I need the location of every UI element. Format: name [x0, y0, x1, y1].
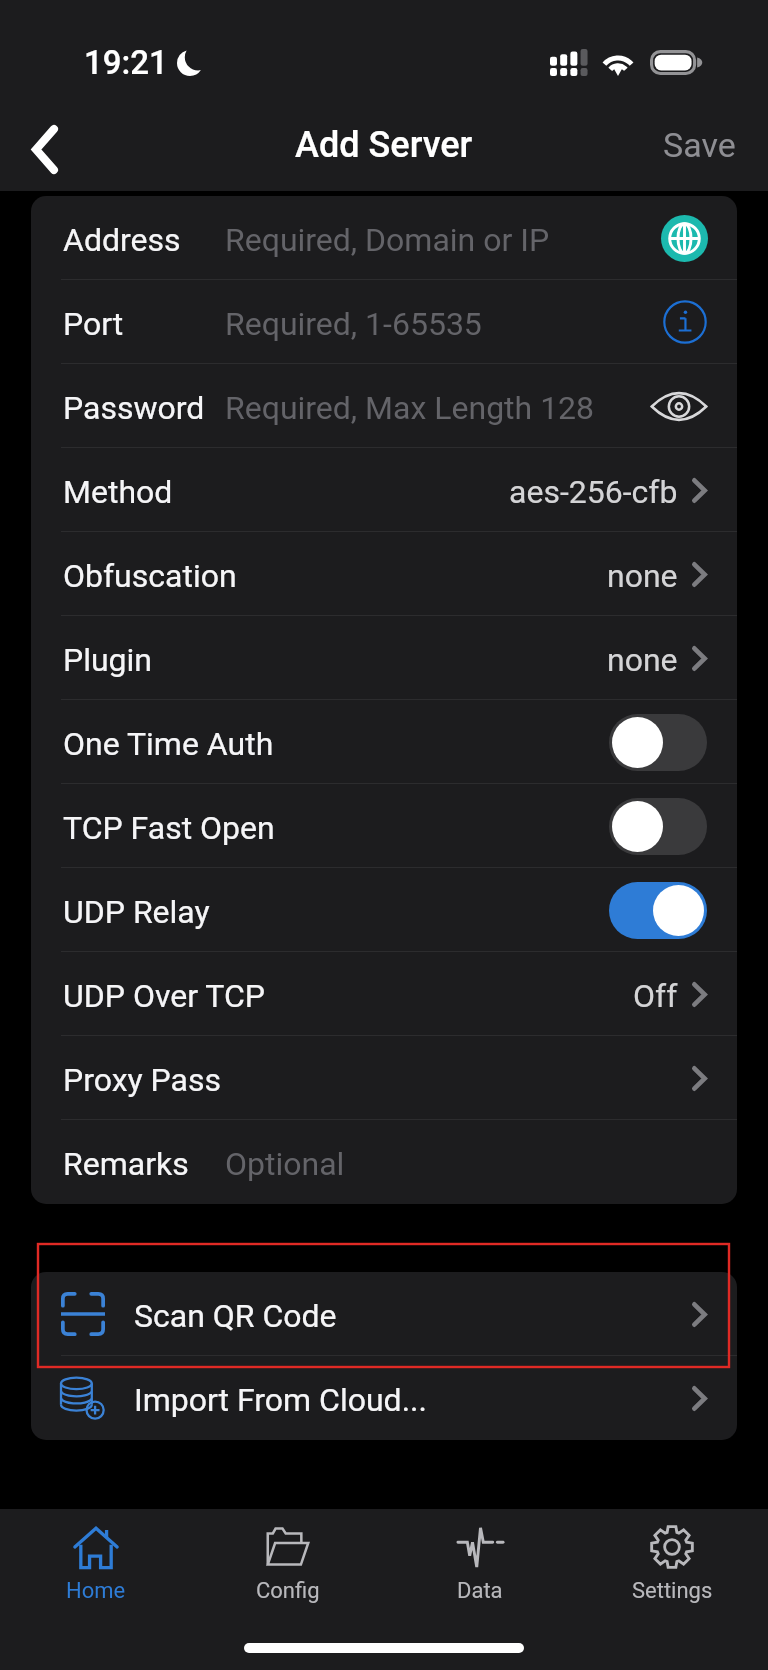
staticText: Method — [63, 473, 173, 511]
button[interactable]: Port — [31, 280, 737, 364]
button[interactable]: Plugin — [31, 616, 737, 700]
staticText: Data — [457, 1578, 503, 1604]
staticText: Config — [256, 1578, 320, 1604]
button[interactable]: Scan QR Code — [31, 1272, 737, 1356]
staticText: Required, Domain or IP — [225, 221, 550, 259]
button[interactable]: UDP Relay — [31, 868, 737, 952]
button[interactable]: UDP Relay — [609, 882, 707, 939]
staticText: Address — [63, 221, 181, 259]
button[interactable]: Address — [31, 196, 737, 280]
button[interactable]: Import From Cloud... — [31, 1356, 737, 1440]
staticText: aes-256-cfb — [509, 473, 678, 511]
button[interactable]: Method — [31, 448, 737, 532]
button[interactable]: UDP Over TCP — [31, 952, 737, 1036]
staticText: Optional — [225, 1145, 345, 1183]
button[interactable]: One Time Auth — [31, 700, 737, 784]
button[interactable]: Password — [31, 364, 737, 448]
staticText: none — [607, 557, 678, 595]
staticText: TCP Fast Open — [63, 809, 275, 847]
staticText: Off — [633, 977, 678, 1015]
staticText: One Time Auth — [63, 725, 274, 763]
staticText: Add Server — [295, 124, 473, 166]
staticText: UDP Over TCP — [63, 977, 265, 1015]
button[interactable]: Data — [405, 1509, 555, 1633]
staticText: 19:21 — [84, 43, 168, 82]
staticText: UDP Relay — [63, 893, 210, 931]
staticText: Obfuscation — [63, 557, 237, 595]
button[interactable]: Settings — [597, 1509, 747, 1633]
staticText: Import From Cloud... — [134, 1381, 427, 1419]
staticText: Port — [63, 305, 124, 343]
staticText: Password — [63, 389, 205, 427]
staticText: Proxy Pass — [63, 1061, 222, 1099]
staticText: Required, 1-65535 — [225, 305, 482, 343]
button[interactable]: One Time Auth — [609, 714, 707, 771]
staticText: Settings — [632, 1578, 713, 1604]
staticText: none — [607, 641, 678, 679]
button[interactable]: TCP Fast Open — [609, 798, 707, 855]
button[interactable]: Back — [14, 112, 76, 174]
button[interactable]: Remarks — [31, 1120, 737, 1204]
staticText: Plugin — [63, 641, 153, 679]
button[interactable]: TCP Fast Open — [31, 784, 737, 868]
button[interactable]: Config — [213, 1509, 363, 1633]
button[interactable]: Obfuscation — [31, 532, 737, 616]
staticText: Scan QR Code — [134, 1297, 337, 1335]
staticText: Remarks — [63, 1145, 189, 1183]
staticText: Required, Max Length 128 — [225, 389, 595, 427]
button[interactable]: Proxy Pass — [31, 1036, 737, 1120]
button[interactable]: Home — [21, 1509, 171, 1633]
staticText: Save — [663, 125, 736, 165]
button[interactable]: Save — [639, 95, 768, 191]
staticText: Home — [66, 1578, 126, 1604]
